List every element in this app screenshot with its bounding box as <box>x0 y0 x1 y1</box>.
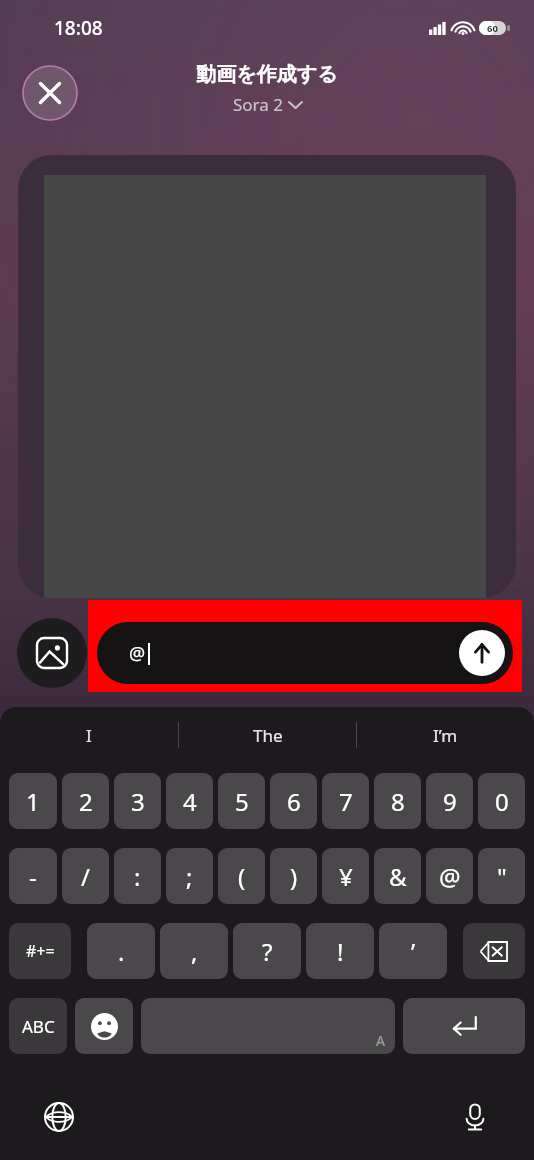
staticText: - <box>29 860 37 893</box>
button[interactable]: 4 <box>166 773 213 829</box>
staticText: 3 <box>131 785 145 818</box>
button[interactable]: ? <box>233 923 301 979</box>
button[interactable]: Dictation <box>454 1096 496 1138</box>
button[interactable]: 2 <box>62 773 109 829</box>
button[interactable]: ( <box>218 848 265 904</box>
staticText: " <box>497 860 507 893</box>
staticText: ABC <box>22 1015 55 1038</box>
staticText: 0 <box>495 785 509 818</box>
button[interactable]: 6 <box>270 773 317 829</box>
staticText: ? <box>262 935 273 968</box>
staticText: : <box>134 860 141 893</box>
button[interactable]: I’m <box>357 707 534 763</box>
staticText: 7 <box>339 785 353 818</box>
button[interactable]: Change keyboard <box>38 1096 80 1138</box>
button[interactable]: Sora 2 <box>229 91 306 118</box>
button[interactable]: 3 <box>114 773 161 829</box>
button[interactable]: ! <box>306 923 374 979</box>
staticText: 4 <box>183 785 197 818</box>
staticText: . <box>118 935 125 968</box>
staticText: 8 <box>391 785 405 818</box>
button[interactable]: Emoji <box>75 998 133 1054</box>
staticText: I <box>86 724 92 747</box>
button[interactable]: @ <box>426 848 473 904</box>
staticText: , <box>191 935 198 968</box>
button[interactable]: 7 <box>322 773 369 829</box>
button[interactable]: #+= <box>9 923 71 979</box>
button[interactable]: ; <box>166 848 213 904</box>
button[interactable]: Return <box>403 998 525 1054</box>
staticText: I’m <box>433 724 458 747</box>
staticText: ! <box>337 935 344 968</box>
staticText: ) <box>290 860 298 893</box>
button[interactable]: ’ <box>379 923 447 979</box>
staticText: 動画を作成する <box>196 62 338 87</box>
staticText: The <box>253 724 283 747</box>
button[interactable]: 1 <box>9 773 57 829</box>
button[interactable]: . <box>87 923 155 979</box>
button[interactable]: 0 <box>478 773 525 829</box>
button[interactable]: Add image <box>17 618 87 688</box>
staticText: ’ <box>411 935 416 968</box>
button[interactable]: @ <box>97 622 513 684</box>
button[interactable]: Backspace <box>463 923 525 979</box>
staticText: @ <box>439 860 461 893</box>
staticText: 2 <box>79 785 93 818</box>
button[interactable]: / <box>62 848 109 904</box>
button[interactable]: " <box>478 848 525 904</box>
button[interactable]: ¥ <box>322 848 369 904</box>
staticText: 9 <box>443 785 457 818</box>
staticText: & <box>389 860 407 893</box>
button[interactable]: ABC <box>9 998 67 1054</box>
staticText: #+= <box>26 940 55 962</box>
staticText: ( <box>238 860 246 893</box>
button[interactable]: 9 <box>426 773 473 829</box>
staticText: 6 <box>287 785 301 818</box>
button[interactable]: Send <box>459 630 505 676</box>
staticText: 5 <box>235 785 249 818</box>
staticText: ¥ <box>339 860 353 893</box>
button[interactable]: & <box>374 848 421 904</box>
button[interactable]: The <box>179 707 356 763</box>
button[interactable]: : <box>114 848 161 904</box>
button[interactable]: - <box>9 848 57 904</box>
staticText: 18:08 <box>54 15 103 41</box>
staticText: 60 <box>487 22 498 35</box>
staticText: 1 <box>26 785 40 818</box>
button[interactable]: I <box>0 707 178 763</box>
button[interactable]: Close <box>22 65 78 121</box>
staticText: A <box>376 1031 385 1050</box>
staticText: Sora 2 <box>233 93 283 116</box>
button[interactable]: ) <box>270 848 317 904</box>
button[interactable]: 8 <box>374 773 421 829</box>
staticText: @ <box>129 641 146 666</box>
staticText: / <box>81 860 90 893</box>
staticText: ; <box>186 860 193 893</box>
button[interactable]: 5 <box>218 773 265 829</box>
button[interactable]: A <box>141 998 395 1054</box>
button[interactable]: , <box>160 923 228 979</box>
